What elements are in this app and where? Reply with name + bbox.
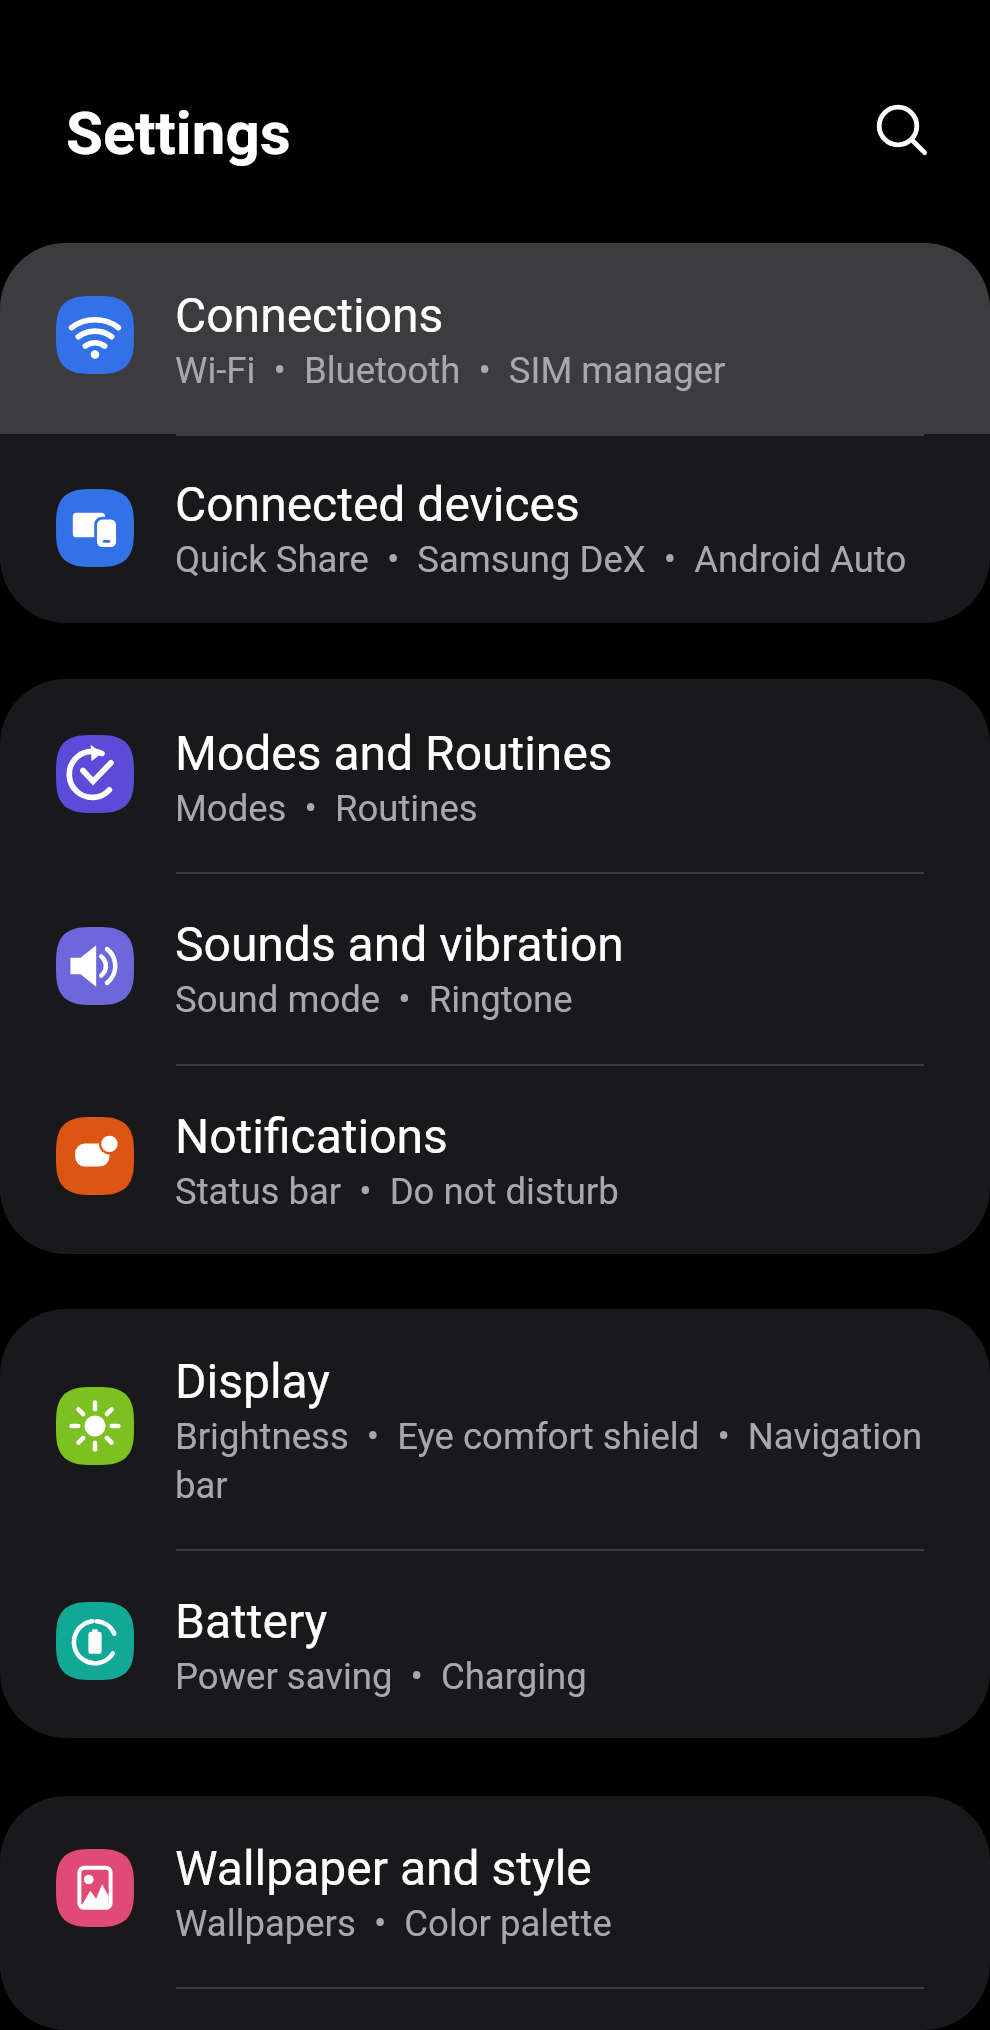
button[interactable]: Wallpaper and style — [0, 1796, 990, 1987]
staticText: Status bar • Do not disturb — [175, 1165, 619, 1214]
staticText: Modes and Routines — [175, 726, 613, 782]
button[interactable]: Connections — [0, 243, 990, 434]
staticText: Settings — [66, 98, 291, 168]
staticText: Wallpapers • Color palette — [175, 1897, 612, 1946]
staticText: Power saving • Charging — [175, 1650, 587, 1699]
staticText: Wallpaper and style — [175, 1841, 592, 1897]
staticText: Quick Share • Samsung DeX • Android Auto — [175, 533, 907, 582]
staticText: Battery — [175, 1594, 328, 1650]
button[interactable]: Display — [0, 1309, 990, 1549]
staticText: Display — [175, 1354, 331, 1410]
staticText: Sound mode • Ringtone — [175, 973, 573, 1022]
button[interactable]: Connected devices — [0, 436, 990, 623]
button[interactable]: Notifications — [0, 1066, 990, 1254]
staticText: Connected devices — [175, 477, 580, 533]
staticText: Connections — [175, 288, 444, 344]
button[interactable]: Search — [858, 86, 938, 166]
staticText: Wi-Fi • Bluetooth • SIM manager — [175, 344, 726, 393]
button[interactable]: Modes and Routines — [0, 679, 990, 872]
staticText: Sounds and vibration — [175, 917, 624, 973]
button[interactable]: Battery — [0, 1551, 990, 1738]
staticText: Notifications — [175, 1109, 448, 1165]
staticText: Brightness • Eye comfort shield • Naviga… — [175, 1410, 942, 1508]
staticText: Modes • Routines — [175, 782, 478, 831]
button[interactable]: Sounds and vibration — [0, 874, 990, 1064]
